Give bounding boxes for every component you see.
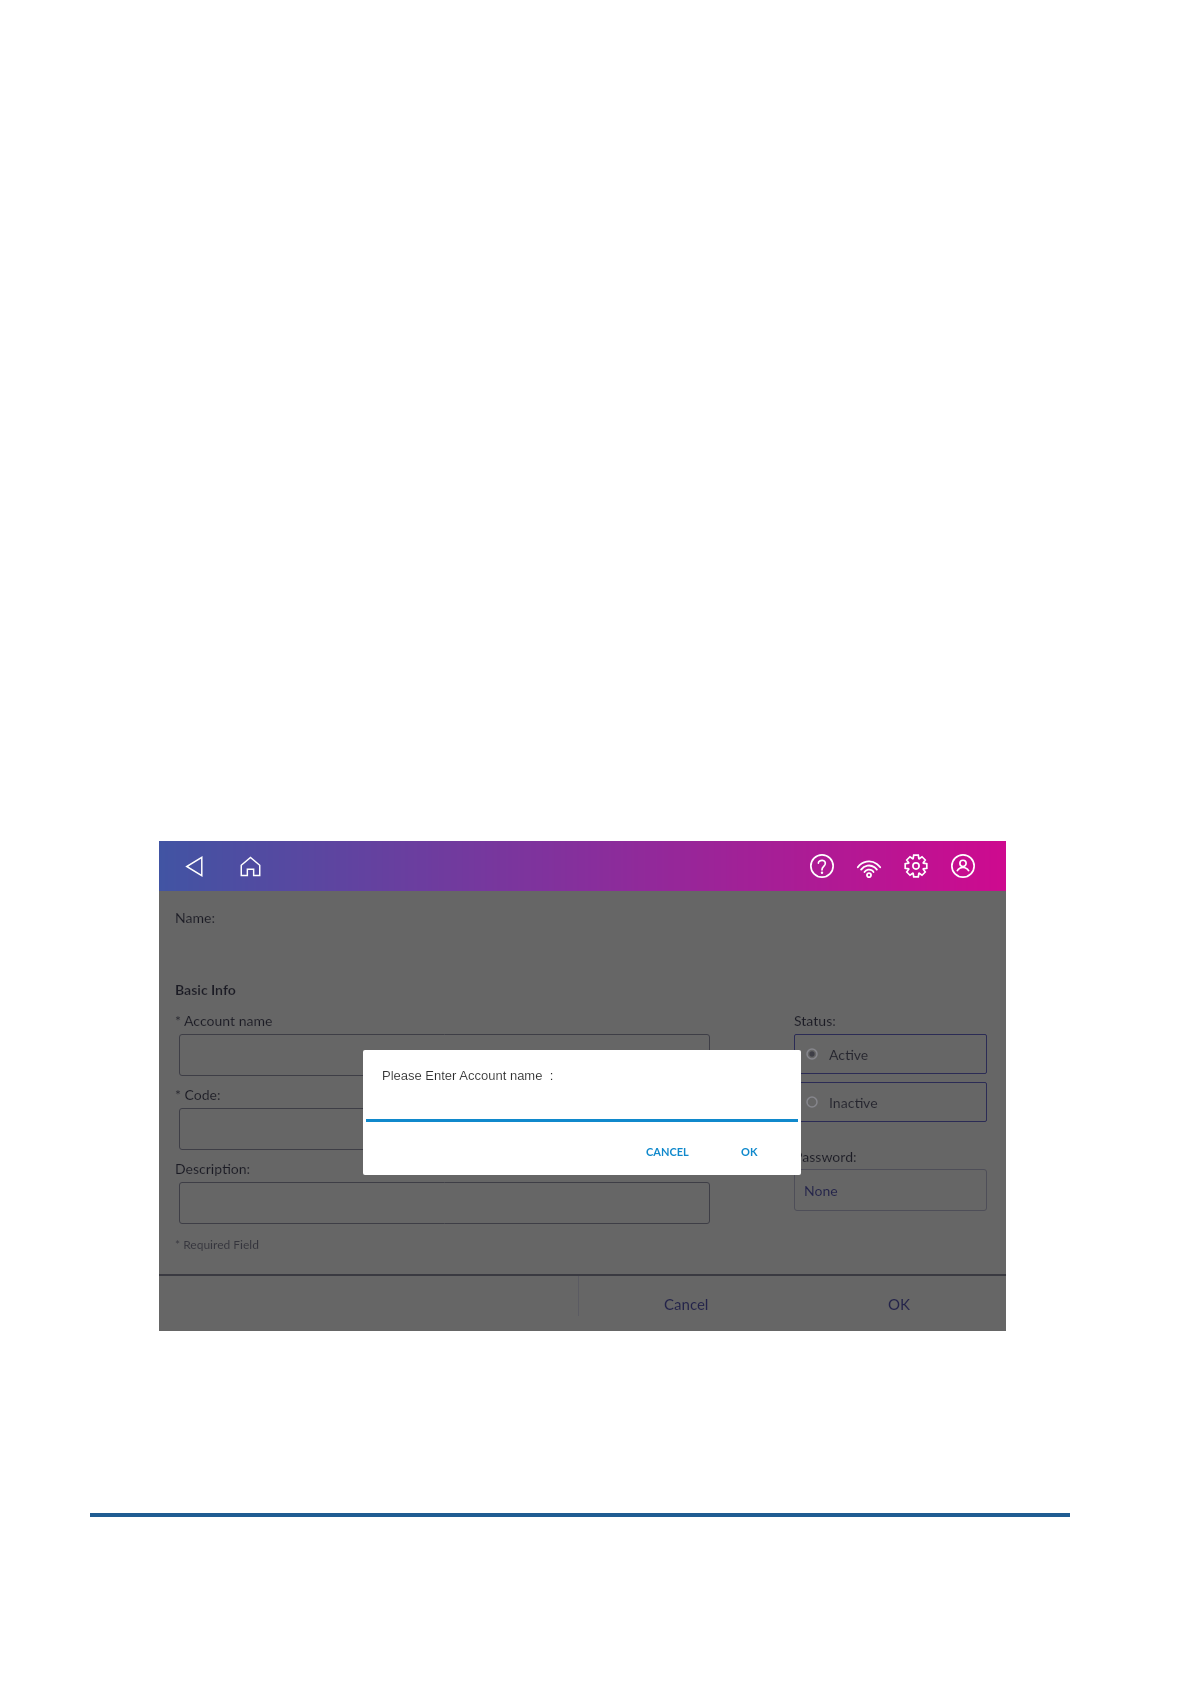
staticText: Password: bbox=[794, 1148, 857, 1165]
staticText: * Code: bbox=[175, 1086, 221, 1103]
staticText: Cancel bbox=[664, 1295, 709, 1313]
button[interactable]: Inactive bbox=[794, 1082, 987, 1122]
staticText: Active bbox=[829, 1046, 869, 1063]
button[interactable]: OK bbox=[731, 1139, 768, 1164]
button[interactable]: Cancel bbox=[579, 1276, 793, 1331]
staticText: CANCEL bbox=[646, 1145, 689, 1158]
staticText: None bbox=[804, 1182, 838, 1199]
button[interactable]: Back bbox=[178, 849, 212, 883]
button[interactable]: Description bbox=[179, 1182, 710, 1224]
button[interactable]: Active bbox=[794, 1034, 987, 1074]
button[interactable]: Settings bbox=[899, 849, 933, 883]
staticText: OK bbox=[741, 1145, 758, 1158]
button[interactable]: OK bbox=[793, 1276, 1006, 1331]
button[interactable]: Code bbox=[179, 1108, 710, 1150]
button[interactable]: Account name bbox=[179, 1034, 710, 1076]
staticText: Inactive bbox=[829, 1094, 878, 1111]
button[interactable]: CANCEL bbox=[636, 1139, 699, 1164]
staticText: Description: bbox=[175, 1160, 251, 1177]
staticText: Name: bbox=[175, 909, 216, 926]
staticText: * Required Field bbox=[175, 1237, 259, 1251]
staticText: Please Enter Account name : bbox=[382, 1068, 554, 1083]
staticText: Status: bbox=[794, 1012, 836, 1029]
button[interactable]: Help bbox=[805, 849, 839, 883]
staticText: OK bbox=[888, 1295, 911, 1313]
button[interactable]: Home bbox=[233, 849, 267, 883]
button[interactable]: Wi-Fi bbox=[852, 849, 886, 883]
staticText: * Account name bbox=[175, 1012, 273, 1029]
staticText: Basic Info bbox=[175, 981, 236, 998]
button[interactable]: None bbox=[794, 1169, 987, 1211]
button[interactable]: Account bbox=[946, 849, 980, 883]
